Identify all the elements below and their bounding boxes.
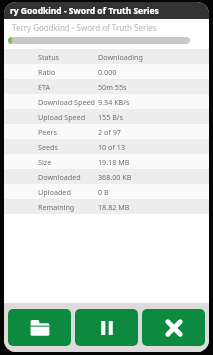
staticText: Size bbox=[38, 157, 52, 167]
staticText: 50m 55s bbox=[98, 82, 127, 92]
button[interactable]: Seeds bbox=[4, 139, 209, 154]
staticText: Remaining bbox=[38, 202, 75, 212]
button[interactable]: Size bbox=[4, 154, 209, 169]
button[interactable]: ETA bbox=[4, 79, 209, 94]
button[interactable]: Ratio bbox=[4, 64, 209, 79]
staticText: Status bbox=[38, 52, 60, 62]
staticText: 18.82 MB bbox=[98, 202, 130, 212]
staticText: 0.000 bbox=[98, 67, 117, 77]
staticText: ETA bbox=[38, 82, 51, 92]
button[interactable]: Download Speed bbox=[4, 94, 209, 109]
staticText: Terry Goodkind - Sword of Truth Series bbox=[12, 22, 157, 33]
staticText: Seeds bbox=[38, 142, 58, 152]
button[interactable]: Upload Speed bbox=[4, 109, 209, 124]
button[interactable]: Downloaded bbox=[4, 169, 209, 184]
staticText: Downloaded bbox=[38, 172, 81, 182]
staticText: Upload Speed bbox=[38, 112, 86, 122]
button[interactable]: Remaining bbox=[4, 199, 209, 214]
staticText: Downloading bbox=[98, 52, 143, 62]
staticText: 368.00 KB bbox=[98, 172, 132, 182]
staticText: 155 B/s bbox=[98, 112, 123, 122]
button[interactable]: ry Goodkind - Sword of Truth Series bbox=[4, 2, 209, 19]
staticText: Ratio bbox=[38, 67, 56, 77]
staticText: 10 of 13 bbox=[98, 142, 126, 152]
button[interactable]: Cancel bbox=[142, 309, 205, 346]
button[interactable]: Uploaded bbox=[4, 184, 209, 199]
button[interactable]: Status bbox=[4, 49, 209, 64]
staticText: Download Speed bbox=[38, 97, 95, 107]
staticText: 9.34 KB/s bbox=[98, 97, 130, 107]
button[interactable]: Pause bbox=[75, 309, 138, 346]
button[interactable]: Peers bbox=[4, 124, 209, 139]
staticText: ry Goodkind - Sword of Truth Series bbox=[10, 5, 159, 17]
staticText: 19.18 MB bbox=[98, 157, 130, 167]
staticText: Uploaded bbox=[38, 187, 71, 197]
staticText: 0 B bbox=[98, 187, 109, 197]
staticText: 2 of 97 bbox=[98, 127, 121, 137]
staticText: Peers bbox=[38, 127, 57, 137]
button[interactable]: Open folder bbox=[8, 309, 71, 346]
